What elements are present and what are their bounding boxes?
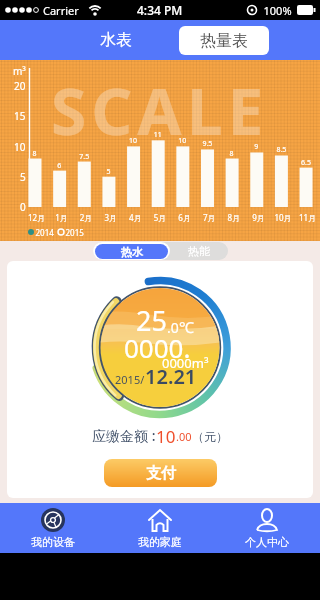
staticText: .00 [176, 429, 192, 444]
staticText: 0000m³ [162, 354, 209, 372]
staticText: 水表 [100, 30, 132, 50]
staticText: （元） [192, 429, 228, 444]
staticText: 热量表 [200, 31, 248, 51]
staticText: ℃ [179, 317, 194, 337]
button[interactable]: 热水 [93, 242, 170, 260]
staticText: 2015/ [115, 372, 145, 387]
staticText: 10 [156, 425, 176, 445]
button[interactable]: 热量表 [179, 26, 269, 55]
button[interactable]: 水表 [76, 20, 156, 60]
button[interactable]: 我的设备 [0, 503, 106, 553]
staticText: 我的设备 [31, 535, 75, 549]
staticText: 应缴金额 : [92, 426, 156, 445]
button[interactable]: 热能 [170, 242, 228, 260]
staticText: 热能 [188, 244, 210, 258]
staticText: 25 [136, 302, 167, 339]
button[interactable]: 个人中心 [213, 503, 320, 553]
staticText: 热水 [121, 245, 143, 259]
staticText: .0 [167, 318, 179, 337]
staticText: 个人中心 [245, 535, 289, 549]
staticText: 我的家庭 [138, 535, 182, 549]
staticText: 12.21 [145, 363, 197, 390]
button[interactable]: 支付 [104, 459, 217, 487]
button[interactable]: 我的家庭 [106, 503, 213, 553]
staticText: 支付 [146, 464, 176, 483]
staticText: 0000. [124, 330, 191, 365]
